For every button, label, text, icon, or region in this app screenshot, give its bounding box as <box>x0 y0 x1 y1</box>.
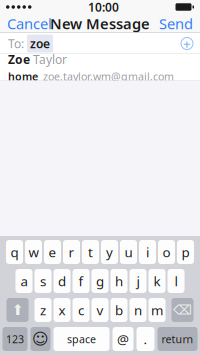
staticText: y <box>106 243 113 261</box>
button[interactable]: h <box>110 269 127 293</box>
button[interactable]: a <box>15 269 32 293</box>
staticText: x <box>58 301 65 319</box>
button[interactable]: i <box>139 240 156 264</box>
staticText: home <box>8 69 38 84</box>
button[interactable]: f <box>72 269 89 293</box>
button[interactable]: z <box>34 298 51 322</box>
button[interactable]: s <box>34 269 51 293</box>
staticText: r <box>68 243 74 261</box>
staticText: p <box>181 243 189 261</box>
button[interactable]: r <box>63 240 80 264</box>
staticText: b <box>115 301 123 319</box>
button[interactable]: Add contact <box>177 33 197 53</box>
button[interactable]: Delete <box>171 298 193 322</box>
staticText: n <box>134 301 142 319</box>
staticText: e <box>48 243 56 261</box>
button[interactable]: n <box>129 298 146 322</box>
button[interactable]: t <box>82 240 99 264</box>
button[interactable]: o <box>158 240 175 264</box>
staticText: h <box>115 272 123 290</box>
button[interactable]: Emoji <box>30 327 50 351</box>
staticText: m <box>151 301 163 319</box>
staticText: @ <box>117 330 129 348</box>
staticText: To: <box>8 35 24 51</box>
staticText: o <box>162 243 170 261</box>
button[interactable]: w <box>25 240 42 264</box>
staticText: return <box>161 332 193 346</box>
button[interactable]: q <box>6 240 23 264</box>
button[interactable]: Shift <box>6 298 28 322</box>
staticText: z <box>40 301 46 319</box>
staticText: zoe <box>30 35 50 51</box>
button[interactable]: Send <box>152 13 200 33</box>
button[interactable]: j <box>129 269 146 293</box>
button[interactable]: e <box>44 240 61 264</box>
button[interactable]: v <box>91 298 108 322</box>
staticText: Send <box>159 14 193 33</box>
button[interactable]: k <box>148 269 165 293</box>
staticText: space <box>67 332 96 346</box>
staticText: ☺ <box>32 330 49 348</box>
button[interactable]: Zoe <box>0 54 200 81</box>
staticText: zoe.taylor.wm@gmail.com <box>43 69 174 84</box>
staticText: . <box>143 330 147 348</box>
button[interactable]: y <box>101 240 118 264</box>
staticText: t <box>88 243 93 261</box>
button[interactable]: 123 <box>2 327 27 351</box>
staticText: + <box>183 35 191 52</box>
staticText: u <box>124 243 132 261</box>
button[interactable]: u <box>120 240 137 264</box>
staticText: i <box>146 243 149 261</box>
staticText: c <box>78 301 84 319</box>
button[interactable]: m <box>148 298 165 322</box>
button[interactable]: return <box>157 327 197 351</box>
button[interactable]: space <box>53 327 109 351</box>
staticText: Cancel <box>7 14 52 33</box>
button[interactable]: p <box>177 240 194 264</box>
staticText: k <box>153 272 160 290</box>
staticText: ⌫ <box>173 302 192 317</box>
staticText: Zoe <box>8 51 30 67</box>
button[interactable]: g <box>91 269 108 293</box>
staticText: New Message <box>50 14 150 33</box>
button[interactable]: l <box>167 269 184 293</box>
button[interactable]: Cancel <box>0 13 59 33</box>
button[interactable]: c <box>72 298 89 322</box>
button[interactable]: b <box>110 298 127 322</box>
staticText: d <box>58 272 66 290</box>
staticText: l <box>174 272 177 290</box>
staticText: ⬆ <box>11 302 23 318</box>
button[interactable]: . <box>136 327 154 351</box>
staticText: Taylor <box>33 51 67 67</box>
staticText: g <box>96 272 104 290</box>
staticText: v <box>96 301 103 319</box>
staticText: 10:00 <box>88 0 119 15</box>
staticText: a <box>20 272 27 290</box>
staticText: q <box>10 243 18 261</box>
staticText: w <box>28 243 38 261</box>
staticText: j <box>136 272 139 290</box>
staticText: f <box>78 272 83 290</box>
button[interactable]: d <box>53 269 70 293</box>
button[interactable]: x <box>53 298 70 322</box>
staticText: 123 <box>6 332 24 346</box>
button[interactable]: @ <box>112 327 133 351</box>
staticText: s <box>40 272 46 290</box>
